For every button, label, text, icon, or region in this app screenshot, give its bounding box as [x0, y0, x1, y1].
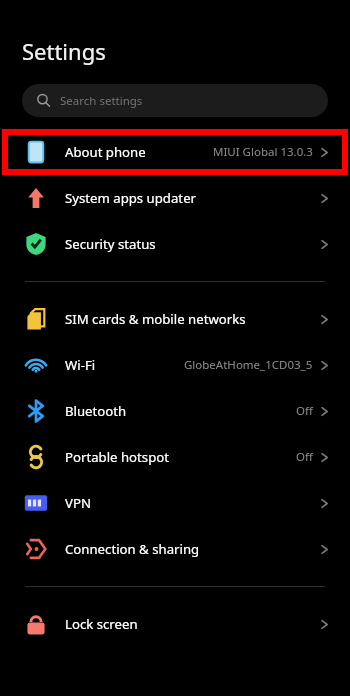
staticText: System apps updater [65, 189, 197, 207]
button[interactable]: VPN [0, 480, 350, 526]
staticText: Wi-Fi [65, 356, 96, 374]
staticText: VPN [65, 494, 91, 512]
staticText: Portable hotspot [65, 448, 169, 466]
staticText: SIM cards & mobile networks [65, 310, 246, 328]
staticText: GlobeAtHome_1CD03_5 [184, 357, 313, 373]
button[interactable]: Wi-Fi [0, 342, 350, 388]
button[interactable]: About phone [0, 129, 350, 175]
staticText: Connection & sharing [65, 540, 200, 558]
staticText: Security status [65, 235, 156, 253]
staticText: Search settings [60, 93, 143, 109]
button[interactable]: SIM cards & mobile networks [0, 296, 350, 342]
staticText: Settings [22, 36, 106, 66]
button[interactable]: System apps updater [0, 175, 350, 221]
staticText: Off [296, 449, 313, 465]
staticText: MIUI Global 13.0.3 [213, 144, 313, 160]
staticText: About phone [65, 143, 146, 161]
staticText: Off [296, 403, 313, 419]
staticText: Lock screen [65, 615, 138, 633]
button[interactable]: Search settings [22, 84, 328, 117]
button[interactable]: Lock screen [0, 601, 350, 647]
button[interactable]: Connection & sharing [0, 526, 350, 572]
button[interactable]: Portable hotspot [0, 434, 350, 480]
button[interactable]: Security status [0, 221, 350, 267]
staticText: Bluetooth [65, 402, 127, 420]
button[interactable]: Bluetooth [0, 388, 350, 434]
